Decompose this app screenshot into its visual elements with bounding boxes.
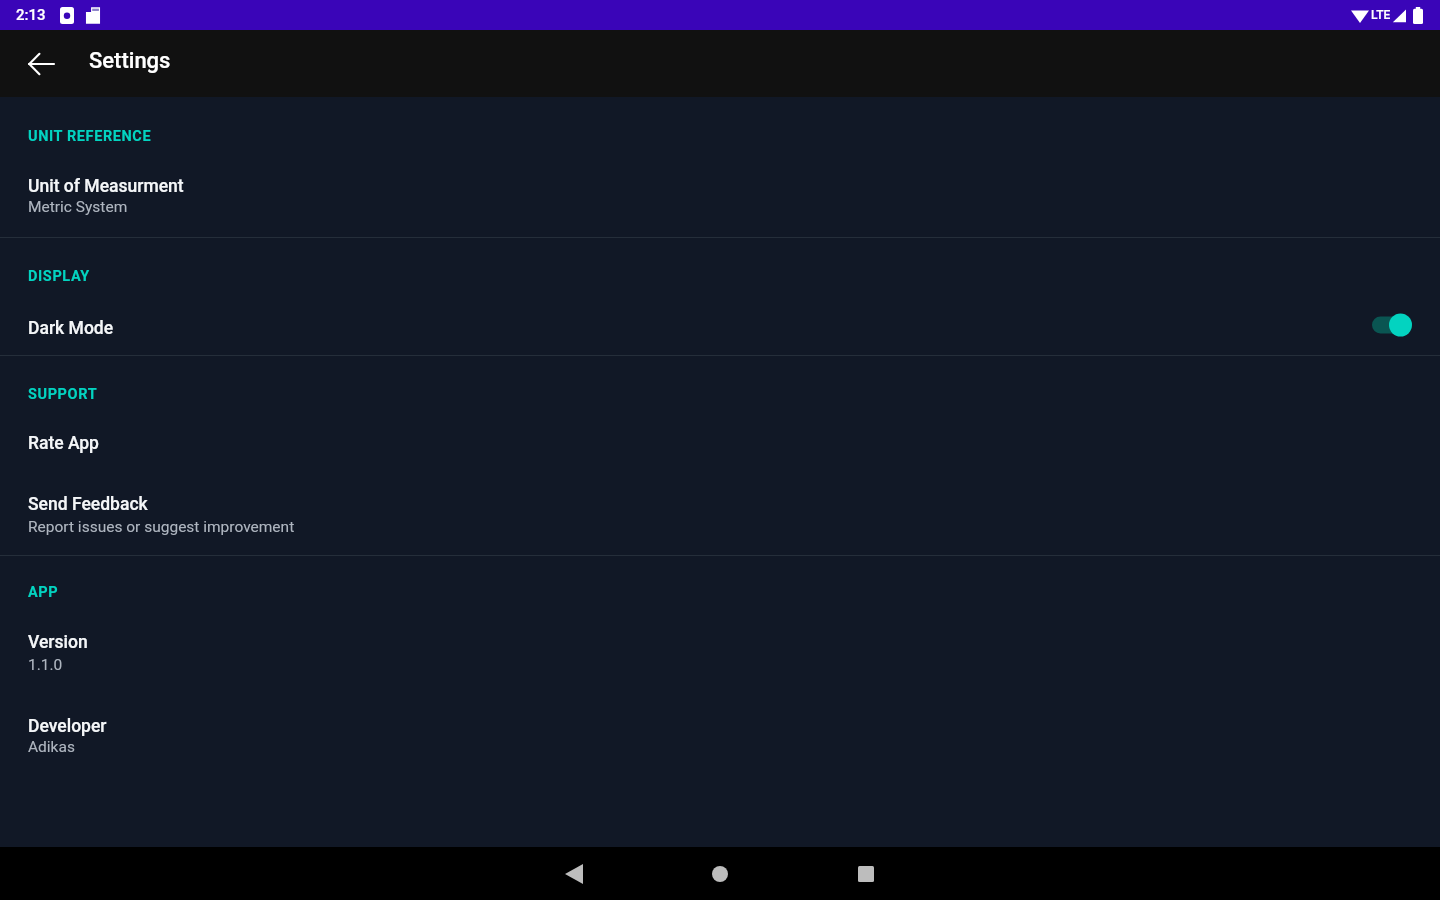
staticText: Developer — [28, 716, 107, 737]
staticText: 1.1.0 — [28, 656, 63, 674]
button[interactable]: Unit of Measurment — [0, 159, 1440, 222]
button[interactable]: Home — [670, 847, 770, 900]
button[interactable]: Back — [524, 847, 624, 900]
staticText: Version — [28, 632, 88, 653]
staticText: DISPLAY — [28, 268, 90, 285]
staticText: UNIT REFERENCE — [28, 128, 152, 145]
staticText: SUPPORT — [28, 386, 98, 403]
staticText: Adikas — [28, 738, 75, 756]
button[interactable]: Send Feedback — [0, 477, 1440, 540]
button[interactable]: Recent apps — [816, 847, 916, 900]
staticText: LTE — [1371, 8, 1391, 22]
button[interactable]: Rate App — [0, 417, 1440, 463]
staticText: 2:13 — [16, 6, 46, 24]
staticText: Report issues or suggest improvement — [28, 518, 295, 536]
button[interactable]: Developer — [0, 699, 1440, 762]
button[interactable]: Back — [17, 40, 65, 88]
staticText: APP — [28, 584, 59, 601]
staticText: Unit of Measurment — [28, 176, 184, 197]
button[interactable]: Version — [0, 616, 1440, 679]
staticText: Send Feedback — [28, 494, 148, 515]
staticText: Dark Mode — [28, 318, 114, 339]
staticText: Settings — [89, 48, 171, 74]
button[interactable]: Dark Mode — [0, 299, 1440, 355]
staticText: Metric System — [28, 198, 128, 216]
staticText: Rate App — [28, 433, 99, 454]
